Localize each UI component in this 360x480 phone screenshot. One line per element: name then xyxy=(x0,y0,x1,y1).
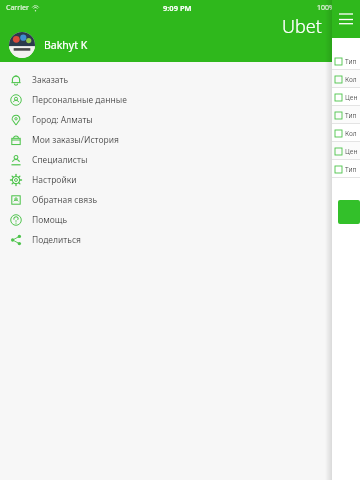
staticText: Bakhyt K xyxy=(44,38,88,52)
staticText: Кол xyxy=(345,129,357,138)
staticText: Помощь xyxy=(32,214,68,226)
staticText: Поделиться xyxy=(32,234,81,246)
staticText: Заказать xyxy=(32,74,69,86)
staticText: Специалисты xyxy=(32,154,88,166)
button[interactable]: Поделиться xyxy=(0,230,360,250)
staticText: Цен xyxy=(345,147,358,156)
button[interactable]: Цен xyxy=(332,142,360,160)
staticText: Carrier xyxy=(6,3,29,13)
button[interactable]: Bakhyt K xyxy=(9,32,360,58)
button[interactable]: Menu xyxy=(332,0,360,38)
staticText: Тип xyxy=(345,57,357,66)
button[interactable]: Город: Алматы xyxy=(0,110,360,130)
button[interactable]: Кол xyxy=(332,70,360,88)
button[interactable] xyxy=(338,200,360,224)
button[interactable]: Цен xyxy=(332,88,360,106)
staticText: Обратная связь xyxy=(32,194,98,206)
staticText: Мои заказы/История xyxy=(32,134,119,146)
button[interactable]: Тип xyxy=(332,52,360,70)
staticText: Город: Алматы xyxy=(32,114,93,126)
button[interactable]: Кол xyxy=(332,124,360,142)
staticText: 100% xyxy=(317,3,335,13)
staticText: Тип xyxy=(345,165,357,174)
button[interactable]: Персональные данные xyxy=(0,90,360,110)
staticText: 9:09 PM xyxy=(163,3,192,13)
staticText: Персональные данные xyxy=(32,94,127,106)
staticText: Ubet xyxy=(282,14,322,39)
button[interactable]: Тип xyxy=(332,160,360,178)
button[interactable]: Заказать xyxy=(0,70,360,90)
button[interactable]: Настройки xyxy=(0,170,360,190)
button[interactable]: Помощь xyxy=(0,210,360,230)
button[interactable]: Тип xyxy=(332,106,360,124)
staticText: Цен xyxy=(345,93,358,102)
staticText: Настройки xyxy=(32,174,77,186)
staticText: Кол xyxy=(345,75,357,84)
button[interactable]: Мои заказы/История xyxy=(0,130,360,150)
staticText: Тип xyxy=(345,111,357,120)
button[interactable]: Обратная связь xyxy=(0,190,360,210)
button[interactable]: Специалисты xyxy=(0,150,360,170)
